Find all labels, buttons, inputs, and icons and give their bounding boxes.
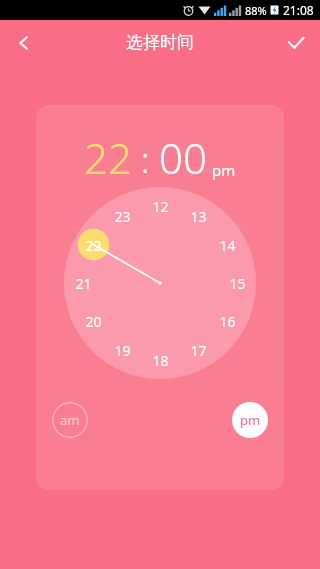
button[interactable]: 19 — [108, 336, 136, 364]
staticText: 22 — [84, 129, 132, 186]
staticText: 14 — [219, 236, 236, 255]
button[interactable]: 22 — [79, 231, 107, 259]
button[interactable]: am — [52, 402, 88, 438]
button[interactable]: 16 — [213, 307, 241, 335]
staticText: 20 — [85, 312, 102, 331]
button[interactable]: 21 — [69, 269, 97, 297]
button[interactable]: 17 — [184, 336, 212, 364]
staticText: 18 — [152, 351, 169, 370]
button[interactable]: 15 — [223, 269, 251, 297]
staticText: am — [60, 411, 80, 429]
staticText: 22 — [85, 236, 102, 255]
staticText: 21:08 — [283, 2, 314, 18]
staticText: 17 — [190, 341, 207, 360]
button[interactable]: Confirm — [272, 20, 320, 65]
button[interactable]: 23 — [108, 202, 136, 230]
staticText: 选择时间 — [126, 32, 194, 53]
button[interactable]: 20 — [79, 307, 107, 335]
staticText: pm — [212, 160, 236, 180]
staticText: 15 — [229, 274, 246, 293]
button[interactable]: 12 — [146, 192, 174, 220]
button[interactable]: 00 — [159, 129, 207, 186]
staticText: 16 — [219, 312, 236, 331]
button[interactable]: pm — [232, 402, 268, 438]
staticText: 12 — [152, 197, 169, 216]
staticText: 19 — [114, 341, 131, 360]
button[interactable]: 13 — [184, 202, 212, 230]
staticText: pm — [240, 411, 261, 429]
staticText: : — [141, 137, 150, 183]
staticText: 23 — [114, 207, 131, 226]
button[interactable]: 22 — [84, 129, 132, 186]
staticText: 21 — [75, 274, 92, 293]
staticText: 13 — [190, 207, 207, 226]
staticText: 00 — [159, 129, 207, 186]
staticText: 88% — [245, 3, 267, 18]
button[interactable]: 14 — [213, 231, 241, 259]
button[interactable]: 18 — [146, 346, 174, 374]
button[interactable]: Back — [0, 20, 48, 65]
